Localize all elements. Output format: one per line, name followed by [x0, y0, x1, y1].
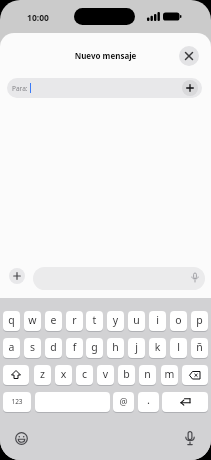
button[interactable]: c	[76, 365, 93, 385]
button[interactable]: q	[3, 311, 20, 331]
staticText: @	[113, 395, 134, 407]
button[interactable]: h	[107, 338, 124, 358]
button[interactable]: k	[149, 338, 166, 358]
button[interactable]: r	[66, 311, 83, 331]
staticText: s	[24, 340, 41, 354]
button[interactable]: f	[66, 338, 83, 358]
button[interactable]: y	[107, 311, 124, 331]
button[interactable]: d	[45, 338, 62, 358]
button[interactable]: w	[24, 311, 41, 331]
button[interactable]: o	[170, 311, 187, 331]
staticText: t	[86, 313, 103, 327]
button[interactable]	[162, 392, 208, 412]
staticText: q	[3, 313, 20, 327]
button[interactable]: p	[191, 311, 208, 331]
staticText: 123	[3, 397, 31, 406]
button[interactable]	[182, 80, 198, 96]
button[interactable]: v	[97, 365, 114, 385]
button[interactable]	[9, 268, 25, 284]
staticText: f	[66, 340, 83, 354]
button[interactable]	[182, 365, 208, 385]
staticText: d	[45, 340, 62, 354]
staticText: w	[24, 313, 41, 327]
button[interactable]: @	[113, 392, 134, 412]
button[interactable]: l	[170, 338, 187, 358]
staticText: .	[138, 392, 159, 407]
button[interactable]: s	[24, 338, 41, 358]
button[interactable]: z	[34, 365, 51, 385]
button[interactable]: 123	[3, 392, 31, 412]
button[interactable]	[33, 267, 205, 290]
staticText: ñ	[191, 340, 208, 354]
button[interactable]: .	[138, 392, 159, 412]
staticText: e	[45, 313, 62, 327]
staticText: k	[149, 340, 166, 354]
staticText: z	[34, 367, 51, 381]
button[interactable]	[3, 365, 29, 385]
staticText: i	[149, 313, 166, 327]
staticText: r	[66, 313, 83, 327]
button[interactable]: Para:	[7, 78, 202, 98]
staticText: Nuevo mensaje	[0, 50, 211, 61]
button[interactable]: b	[118, 365, 135, 385]
staticText: n	[139, 367, 156, 381]
button[interactable]: ñ	[191, 338, 208, 358]
staticText: m	[161, 367, 178, 381]
button[interactable]: m	[161, 365, 178, 385]
button[interactable]: i	[149, 311, 166, 331]
staticText: u	[128, 313, 145, 327]
button[interactable]: x	[55, 365, 72, 385]
staticText: y	[107, 313, 124, 327]
button[interactable]	[179, 46, 199, 66]
staticText: c	[76, 367, 93, 381]
staticText: o	[170, 313, 187, 327]
button[interactable]: g	[86, 338, 103, 358]
staticText: 10:00	[20, 12, 56, 24]
button[interactable]: u	[128, 311, 145, 331]
staticText: g	[86, 340, 103, 354]
staticText: p	[191, 313, 208, 327]
staticText: b	[118, 367, 135, 381]
staticText: v	[97, 367, 114, 381]
staticText: h	[107, 340, 124, 354]
staticText: x	[55, 367, 72, 381]
staticText: j	[128, 340, 145, 354]
staticText: l	[170, 340, 187, 354]
button[interactable]	[35, 392, 110, 412]
staticText: a	[3, 340, 20, 354]
button[interactable]: a	[3, 338, 20, 358]
button[interactable]: n	[139, 365, 156, 385]
button[interactable]: t	[86, 311, 103, 331]
button[interactable]: j	[128, 338, 145, 358]
staticText: Para:	[12, 84, 52, 93]
button[interactable]: e	[45, 311, 62, 331]
